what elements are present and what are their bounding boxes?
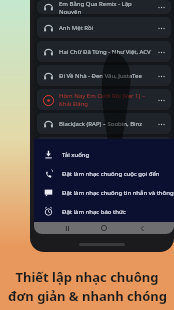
staticText: đơn giản & nhanh chóng [8, 287, 167, 305]
button[interactable]: Tải xuống [44, 145, 174, 164]
other: Song [42, 142, 54, 154]
button[interactable]: Song [37, 0, 171, 14]
button[interactable]: Song [37, 65, 171, 86]
other: Song [42, 70, 54, 82]
button[interactable]: Back [137, 223, 147, 233]
button[interactable]: More options [156, 23, 166, 33]
other: Song [42, 118, 54, 130]
button[interactable]: Song [37, 17, 171, 38]
staticText: Anh Mệt Rồi [59, 24, 153, 32]
staticText: Em Bằng Qua Remix - Lập Nguyên [59, 0, 153, 14]
button[interactable]: More options [156, 2, 166, 12]
staticText: Tải xuống [62, 151, 90, 159]
staticText: Thiết lập nhạc chuông [15, 268, 159, 286]
staticText: Hôm Nay Em Cưới Rồi (Ver 1) – Khải Đăng [59, 92, 153, 108]
staticText: Đặt làm nhạc chuông tin nhắn và thông bá… [62, 189, 174, 197]
other: Song [42, 94, 54, 106]
button[interactable]: Song [37, 137, 171, 158]
other: Song [42, 46, 54, 58]
button[interactable]: Đặt làm nhạc chuông cuộc gọi đến [44, 164, 174, 183]
button[interactable]: More options [156, 119, 166, 129]
button[interactable]: Đặt làm nhạc chuông tin nhắn và thông bá… [44, 183, 174, 202]
staticText: Hai Chữ Đã Từng - Như Việt, ACV [59, 48, 153, 56]
button[interactable]: More options [156, 95, 166, 105]
staticText: Đi Về Nhà - Đen Vâu, JustaTee [59, 72, 153, 80]
button[interactable]: More options [156, 71, 166, 81]
button[interactable]: Song [37, 89, 171, 110]
other: Song [42, 22, 54, 34]
staticText: Đặt làm nhạc chuông cuộc gọi đến [62, 170, 160, 178]
staticText: BlackJack (RAP) – Soobin, Binz [59, 120, 153, 128]
button[interactable]: More options [156, 47, 166, 57]
button[interactable]: Recents [62, 223, 72, 233]
button[interactable]: Home [99, 223, 109, 233]
staticText: Đặt làm nhạc báo thức [62, 208, 126, 216]
button[interactable]: Song [37, 41, 171, 62]
button[interactable]: Song [37, 113, 171, 134]
other: Song [42, 1, 54, 13]
button[interactable]: Đặt làm nhạc báo thức [44, 202, 174, 221]
